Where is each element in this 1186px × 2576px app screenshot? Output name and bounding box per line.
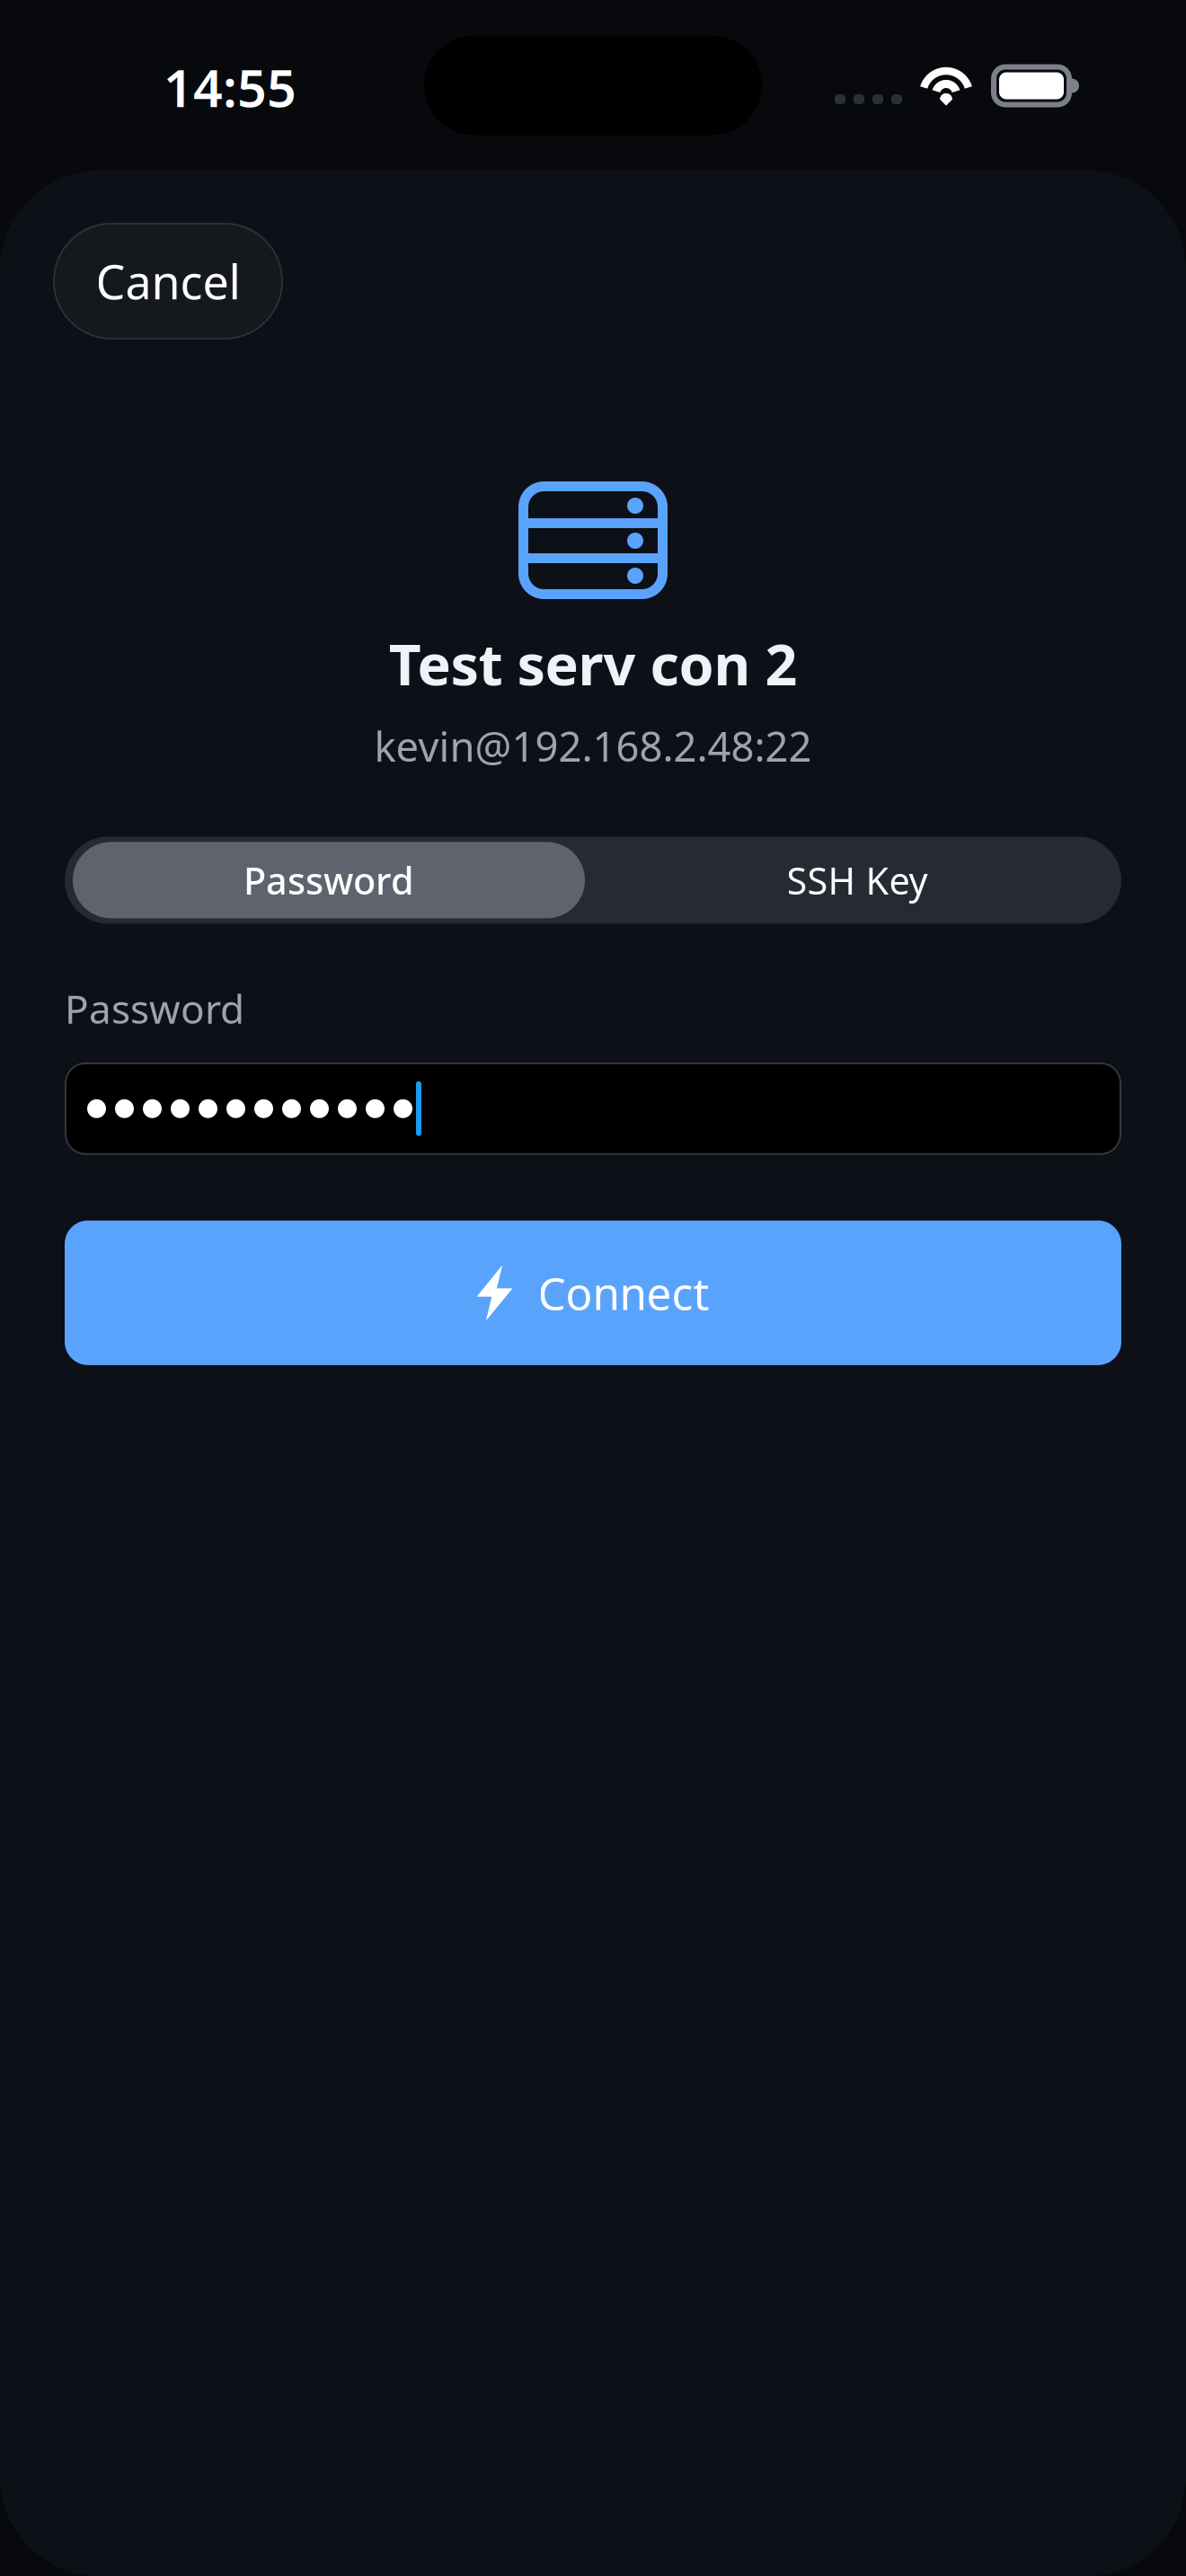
staticText: SSH Key [787, 856, 928, 905]
staticText: 14:55 [164, 53, 296, 121]
button[interactable]: Password [65, 837, 593, 924]
button[interactable]: Cancel [54, 224, 282, 339]
staticText: Test serv con 2 [389, 626, 797, 701]
button[interactable]: Connect [65, 1220, 1121, 1365]
staticText: Connect [538, 1263, 709, 1322]
staticText: Password [243, 856, 414, 905]
staticText: kevin@192.168.2.48:22 [374, 719, 812, 773]
staticText: Password [65, 982, 244, 1035]
staticText: Cancel [96, 250, 240, 312]
button[interactable]: SSH Key [593, 837, 1121, 924]
